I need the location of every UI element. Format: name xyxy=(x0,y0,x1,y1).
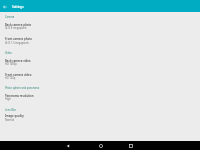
staticText: Settings xyxy=(12,5,24,9)
button[interactable]: Home xyxy=(96,141,105,150)
staticText: Normal xyxy=(5,118,14,121)
button[interactable] xyxy=(0,71,200,85)
staticText: Back camera video xyxy=(5,59,31,63)
staticText: Image quality xyxy=(5,114,24,118)
staticText: Panorama resolution xyxy=(5,94,34,98)
staticText: Video xyxy=(5,51,12,54)
button[interactable]: Recent apps xyxy=(126,141,135,150)
staticText: Lens Blur xyxy=(5,108,17,111)
button[interactable]: Back xyxy=(63,141,72,150)
staticText: (4:3) 8 megapixels xyxy=(5,26,27,29)
button[interactable] xyxy=(0,91,200,105)
staticText: Front camera video xyxy=(5,73,32,77)
button[interactable] xyxy=(0,35,200,49)
staticText: Front camera photo xyxy=(5,37,33,41)
staticText: Back camera photo xyxy=(5,23,32,27)
button[interactable] xyxy=(0,57,200,71)
staticText: HD 720p xyxy=(5,76,16,79)
button[interactable] xyxy=(0,20,200,34)
staticText: High xyxy=(5,97,11,100)
button[interactable] xyxy=(0,112,200,126)
staticText: Camera xyxy=(5,15,15,18)
button[interactable]: Back xyxy=(1,3,8,10)
staticText: HD 1080p xyxy=(5,62,17,65)
staticText: Photo sphere and panorama xyxy=(5,86,40,89)
staticText: (4:3) 1.3 megapixels xyxy=(5,41,29,44)
